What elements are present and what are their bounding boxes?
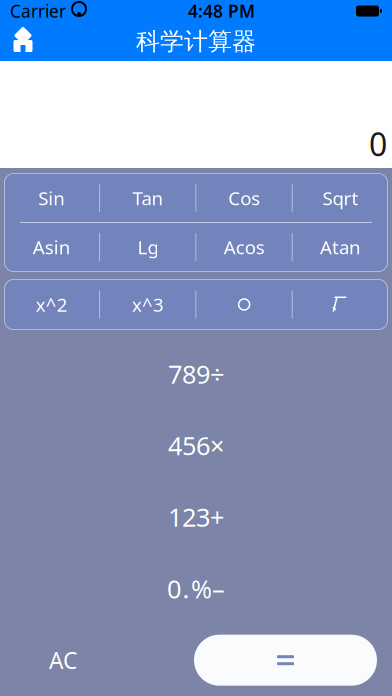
staticText: Acos: [224, 235, 265, 259]
staticText: .: [182, 572, 189, 605]
button[interactable]: 0: [167, 553, 181, 624]
button[interactable]: 5: [182, 410, 196, 481]
staticText: 5: [182, 429, 196, 462]
staticText: 1: [168, 500, 182, 534]
staticText: 4: [168, 429, 182, 462]
button[interactable]: 6: [196, 410, 210, 481]
button[interactable]: .: [181, 553, 191, 624]
button[interactable]: x^3: [100, 280, 195, 328]
staticText: 2: [182, 500, 196, 534]
button[interactable]: ×: [210, 410, 224, 481]
staticText: Asin: [33, 235, 71, 259]
staticText: +: [210, 500, 224, 534]
button[interactable]: –: [212, 553, 225, 624]
staticText: Cos: [228, 186, 260, 210]
staticText: Carrier: [10, 0, 66, 22]
button[interactable]: Sqrt: [293, 174, 388, 222]
staticText: x^2: [36, 292, 68, 317]
button[interactable]: 3: [196, 481, 210, 553]
staticText: Tan: [132, 186, 163, 210]
button[interactable]: 8: [182, 338, 196, 410]
staticText: 3: [196, 500, 210, 534]
staticText: 科学计算器: [136, 27, 256, 56]
button[interactable]: +: [210, 481, 224, 553]
staticText: AC: [49, 645, 77, 675]
button[interactable]: Tan: [100, 174, 195, 222]
button[interactable]: Acos: [196, 223, 292, 271]
button[interactable]: Atan: [293, 223, 388, 271]
staticText: 7: [168, 357, 182, 391]
staticText: Lg: [137, 235, 158, 259]
staticText: ÷: [210, 357, 224, 391]
button[interactable]: x^2: [4, 280, 99, 328]
staticText: x^3: [132, 292, 164, 317]
button[interactable]: Home: [0, 22, 46, 61]
staticText: 6: [196, 429, 210, 462]
button[interactable]: Degree: [196, 280, 292, 328]
staticText: 4:48 PM: [188, 0, 255, 22]
staticText: Sqrt: [322, 186, 358, 210]
button[interactable]: Equals: [194, 635, 377, 686]
button[interactable]: 9: [196, 338, 210, 410]
button[interactable]: 7: [168, 338, 182, 410]
staticText: 0: [167, 572, 181, 605]
staticText: 0: [369, 122, 387, 165]
staticText: 9: [196, 357, 210, 391]
staticText: 8: [182, 357, 196, 391]
button[interactable]: Square root: [293, 280, 388, 328]
staticText: ×: [210, 429, 224, 462]
button[interactable]: 2: [182, 481, 196, 553]
staticText: –: [212, 572, 225, 605]
button[interactable]: ÷: [210, 338, 224, 410]
button[interactable]: AC: [0, 624, 126, 696]
button[interactable]: Asin: [4, 223, 99, 271]
staticText: %: [191, 572, 212, 605]
staticText: Atan: [320, 235, 361, 259]
button[interactable]: Cos: [196, 174, 292, 222]
button[interactable]: 4: [168, 410, 182, 481]
staticText: Sin: [38, 186, 65, 210]
button[interactable]: Sin: [4, 174, 99, 222]
button[interactable]: %: [191, 553, 212, 624]
button[interactable]: 1: [168, 481, 182, 553]
button[interactable]: Lg: [100, 223, 195, 271]
